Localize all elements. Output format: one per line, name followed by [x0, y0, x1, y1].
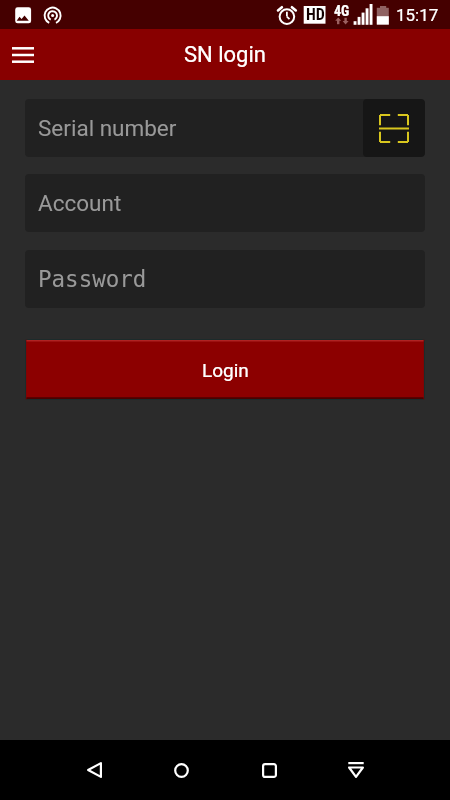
- button[interactable]: Scan barcode: [363, 99, 425, 157]
- button[interactable]: Menu: [0, 29, 45, 80]
- button[interactable]: Login: [25, 339, 425, 400]
- button[interactable]: Home: [156, 745, 206, 795]
- staticText: 4G: [334, 3, 350, 19]
- staticText: HD: [306, 5, 325, 24]
- staticText: Account: [38, 190, 122, 216]
- button[interactable]: Back: [69, 745, 119, 795]
- staticText: Serial number: [38, 115, 177, 141]
- staticText: SN login: [184, 42, 266, 68]
- staticText: Password: [38, 266, 147, 292]
- staticText: 15:17: [396, 5, 439, 25]
- button[interactable]: Serial number: [25, 99, 425, 157]
- button[interactable]: Account: [25, 174, 425, 232]
- staticText: Login: [202, 359, 249, 381]
- button[interactable]: Password: [25, 250, 425, 308]
- button[interactable]: Recent apps: [244, 745, 294, 795]
- button[interactable]: Hide keyboard: [331, 745, 381, 795]
